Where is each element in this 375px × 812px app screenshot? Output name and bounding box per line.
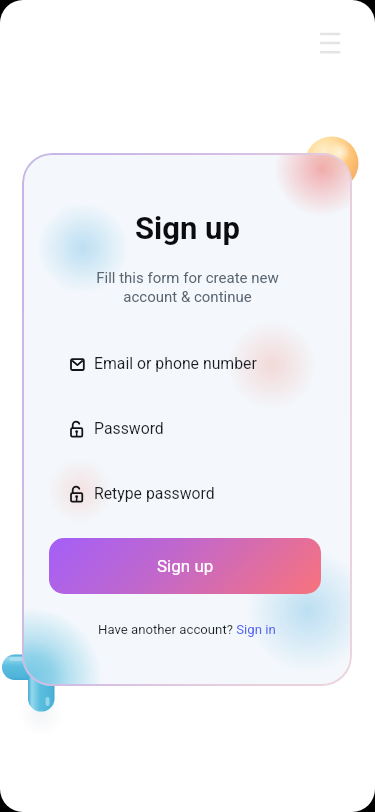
button[interactable]: Email or phone number xyxy=(70,350,320,376)
staticText: Sign up xyxy=(135,210,240,246)
staticText: Email or phone number xyxy=(94,354,257,373)
staticText: Have another account? Sign in xyxy=(98,622,276,637)
staticText: Retype password xyxy=(94,484,215,503)
staticText: Fill this form for create new account & … xyxy=(96,269,279,306)
button[interactable]: Password xyxy=(70,415,320,441)
staticText: Sign up xyxy=(157,556,214,576)
button[interactable]: Have another account? Sign in xyxy=(98,622,276,637)
button[interactable]: Retype password xyxy=(70,480,320,506)
staticText: Password xyxy=(94,419,164,438)
button[interactable]: Sign up xyxy=(49,538,321,594)
button[interactable]: Menu xyxy=(311,24,349,62)
